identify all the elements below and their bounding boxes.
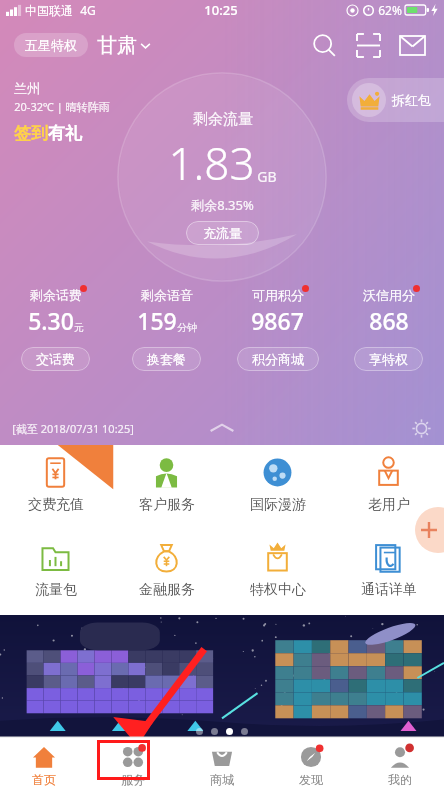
staticText: GB — [257, 167, 277, 186]
staticText: [截至 2018/07/31 10:25] — [12, 421, 134, 436]
staticText: 特权中心 — [250, 581, 306, 599]
button[interactable]: 商城 — [177, 737, 266, 795]
staticText: 国际漫游 — [250, 496, 306, 514]
button[interactable]: 换套餐 — [132, 347, 201, 371]
staticText: 五星特权 — [25, 37, 77, 53]
staticText: 元 — [74, 321, 84, 334]
staticText: 9867 — [251, 305, 304, 336]
button[interactable]: 客户服务 — [111, 445, 222, 530]
staticText: 交话费 — [36, 351, 75, 367]
staticText: 兰州 — [14, 80, 40, 96]
button[interactable]: 金融服务 — [111, 530, 222, 615]
button[interactable]: Search — [302, 23, 346, 67]
button[interactable]: 服务 — [88, 737, 177, 795]
staticText: 剩余语音 — [141, 287, 193, 303]
staticText: 客户服务 — [139, 496, 195, 514]
staticText: 中国联通 — [25, 3, 73, 18]
button[interactable]: 流量包 — [0, 530, 111, 615]
staticText: 4G — [80, 2, 96, 18]
staticText: 充流量 — [203, 225, 242, 241]
button[interactable]: 交话费 — [21, 347, 90, 371]
staticText: 剩余8.35% — [191, 196, 254, 214]
button[interactable] — [0, 615, 444, 741]
button[interactable]: 首页 — [0, 737, 88, 795]
button[interactable]: Settings — [410, 417, 432, 439]
staticText: 甘肃 — [97, 33, 137, 58]
staticText: 159 — [137, 305, 177, 336]
staticText: 868 — [369, 305, 409, 336]
staticText: 享特权 — [369, 351, 408, 367]
button[interactable]: 拆红包 — [347, 78, 444, 122]
staticText: 流量包 — [35, 581, 77, 599]
button[interactable]: 剩余话费 — [0, 287, 111, 336]
staticText: 首页 — [32, 772, 56, 787]
button[interactable]: 沃信用分 — [333, 287, 444, 336]
button[interactable]: 积分商城 — [237, 347, 319, 371]
staticText: 签到 — [14, 123, 48, 144]
button[interactable]: 甘肃 — [97, 33, 151, 58]
staticText: 分钟 — [177, 321, 197, 334]
staticText: 有礼 — [48, 123, 82, 144]
staticText: 20-32℃ | 晴转阵雨 — [14, 99, 110, 114]
button[interactable]: Messages — [390, 23, 434, 67]
staticText: 5.30 — [28, 305, 74, 336]
button[interactable]: 发现 — [266, 737, 355, 795]
button[interactable]: Add — [415, 507, 444, 553]
button[interactable]: 剩余语音 — [111, 287, 222, 336]
staticText: 发现 — [299, 772, 323, 787]
button[interactable]: 我的 — [355, 737, 444, 795]
button[interactable]: 国际漫游 — [222, 445, 333, 530]
button[interactable]: 交费充值 — [0, 445, 111, 530]
staticText: 交费充值 — [28, 496, 84, 514]
button[interactable]: Collapse — [207, 421, 237, 435]
staticText: 服务 — [121, 772, 145, 787]
button[interactable]: 签到 — [14, 123, 82, 144]
staticText: 10:25 — [204, 1, 238, 19]
staticText: 积分商城 — [252, 351, 304, 367]
staticText: 老用户 — [368, 496, 410, 514]
other: Select region — [140, 40, 151, 51]
staticText: 我的 — [388, 772, 412, 787]
button[interactable]: Scan — [346, 23, 390, 67]
staticText: 剩余流量 — [193, 110, 253, 129]
staticText: 拆红包 — [392, 92, 431, 108]
button[interactable]: 通话详单 — [333, 530, 444, 615]
button[interactable]: 可用积分 — [222, 287, 333, 336]
button[interactable]: 充流量 — [186, 221, 259, 245]
staticText: 金融服务 — [139, 581, 195, 599]
staticText: 商城 — [210, 772, 234, 787]
button[interactable]: 五星特权 — [14, 33, 88, 57]
staticText: 1.83 — [168, 133, 255, 193]
staticText: 62% — [378, 2, 402, 18]
staticText: 通话详单 — [361, 581, 417, 599]
staticText: 可用积分 — [252, 287, 304, 303]
button[interactable]: 老用户 — [333, 445, 444, 530]
staticText: 剩余话费 — [30, 287, 82, 303]
staticText: 沃信用分 — [363, 287, 415, 303]
button[interactable]: 特权中心 — [222, 530, 333, 615]
button[interactable]: 享特权 — [354, 347, 423, 371]
staticText: 换套餐 — [147, 351, 186, 367]
